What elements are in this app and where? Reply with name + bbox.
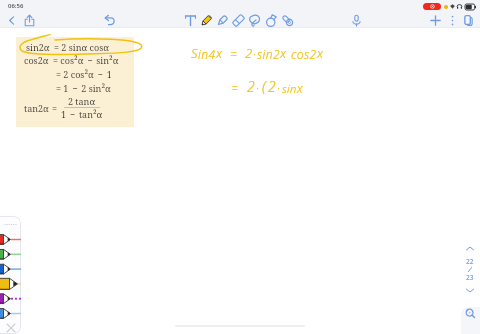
button[interactable]: Laser pointer: [279, 12, 295, 28]
button[interactable]: Blue pen: [0, 255, 21, 270]
button[interactable]: Share: [21, 12, 37, 28]
staticText: ·: [277, 80, 281, 96]
staticText: 2: [268, 77, 277, 96]
button[interactable]: Light blue pen: [0, 300, 21, 315]
staticText: 2: [247, 77, 256, 96]
staticText: =: [230, 46, 238, 62]
button[interactable]: Zoom: [461, 307, 480, 334]
button[interactable]: Previous page: [462, 241, 477, 256]
staticText: cos2α: [24, 54, 49, 66]
button[interactable]: Next page: [462, 283, 477, 298]
staticText: sin: [282, 81, 297, 96]
staticText: S: [191, 44, 198, 62]
staticText: x: [297, 80, 304, 96]
button[interactable]: Highlighter: [214, 12, 230, 28]
button[interactable]: Yellow highlighter: [0, 270, 21, 285]
staticText: = cos²α − sin²α: [53, 54, 119, 66]
staticText: = 2 cos²α − 1: [56, 68, 112, 80]
staticText: 2 tanα: [68, 95, 96, 107]
staticText: 23: [466, 273, 474, 282]
button[interactable]: Lasso: [246, 12, 262, 28]
button[interactable]: Back: [3, 12, 19, 28]
button[interactable]: Green pen: [0, 240, 21, 255]
staticText: ·: [253, 46, 257, 62]
staticText: (: [262, 76, 267, 96]
staticText: 2: [245, 44, 253, 62]
button[interactable]: Pages: [460, 12, 476, 28]
button[interactable]: Red pen: [0, 225, 21, 240]
button[interactable]: More options: [444, 12, 460, 28]
staticText: ·: [256, 80, 260, 96]
staticText: 22: [466, 257, 474, 266]
staticText: =: [52, 102, 58, 114]
button[interactable]: Pencil: [198, 12, 214, 28]
staticText: 1 − tan²α: [61, 108, 103, 120]
staticText: tan2α: [24, 102, 49, 114]
staticText: cos2: [291, 46, 317, 62]
button[interactable]: Text tool: [182, 12, 198, 28]
button[interactable]: Add page: [427, 12, 443, 28]
button[interactable]: Undo: [101, 12, 117, 28]
staticText: x: [216, 44, 223, 62]
staticText: 06:56: [8, 2, 24, 10]
staticText: x: [280, 44, 287, 62]
staticText: = 2 sinα cosα: [54, 41, 110, 53]
staticText: sin2α: [26, 41, 50, 53]
staticText: sin2: [257, 46, 280, 62]
button[interactable]: Close palette: [3, 320, 18, 334]
button[interactable]: Microphone: [348, 12, 364, 28]
staticText: in4: [198, 46, 216, 62]
staticText: = 1 − 2 sin²α: [56, 82, 111, 94]
button[interactable]: Purple dashed pen: [0, 285, 21, 300]
staticText: =: [231, 80, 239, 96]
button[interactable]: Eraser: [230, 12, 246, 28]
staticText: x: [317, 44, 324, 62]
button[interactable]: Shapes: [263, 12, 279, 28]
